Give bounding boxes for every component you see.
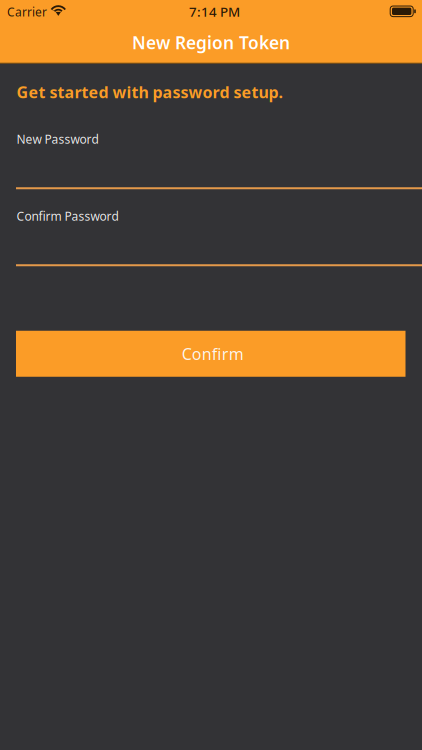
staticText: Carrier [7, 4, 47, 20]
staticText: 7:14 PM [189, 3, 240, 20]
button[interactable]: Confirm [16, 331, 405, 377]
staticText: Confirm Password [16, 208, 118, 224]
staticText: New Region Token [132, 31, 290, 54]
button[interactable]: Confirm Password [16, 206, 422, 266]
staticText: Confirm [182, 343, 244, 364]
staticText: Get started with password setup. [16, 81, 282, 103]
staticText: New Password [16, 131, 98, 147]
button[interactable]: New Password [16, 129, 422, 189]
